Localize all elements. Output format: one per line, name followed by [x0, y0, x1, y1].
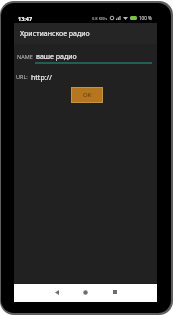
staticText: URL: [16, 73, 28, 80]
staticText: 100 % [139, 15, 152, 21]
button[interactable]: Back [42, 284, 71, 302]
button[interactable]: Home [71, 284, 100, 302]
staticText: http:// [31, 73, 52, 83]
staticText: NAME [17, 53, 33, 60]
staticText: Христианское радио [20, 29, 90, 39]
button[interactable]: Recent apps [100, 284, 129, 302]
staticText: 13:47 [18, 15, 33, 22]
staticText: OK [83, 91, 92, 99]
button[interactable]: OK [71, 87, 103, 103]
staticText: 0.8 KB/s [92, 16, 108, 21]
staticText: ваше радио [36, 52, 77, 62]
